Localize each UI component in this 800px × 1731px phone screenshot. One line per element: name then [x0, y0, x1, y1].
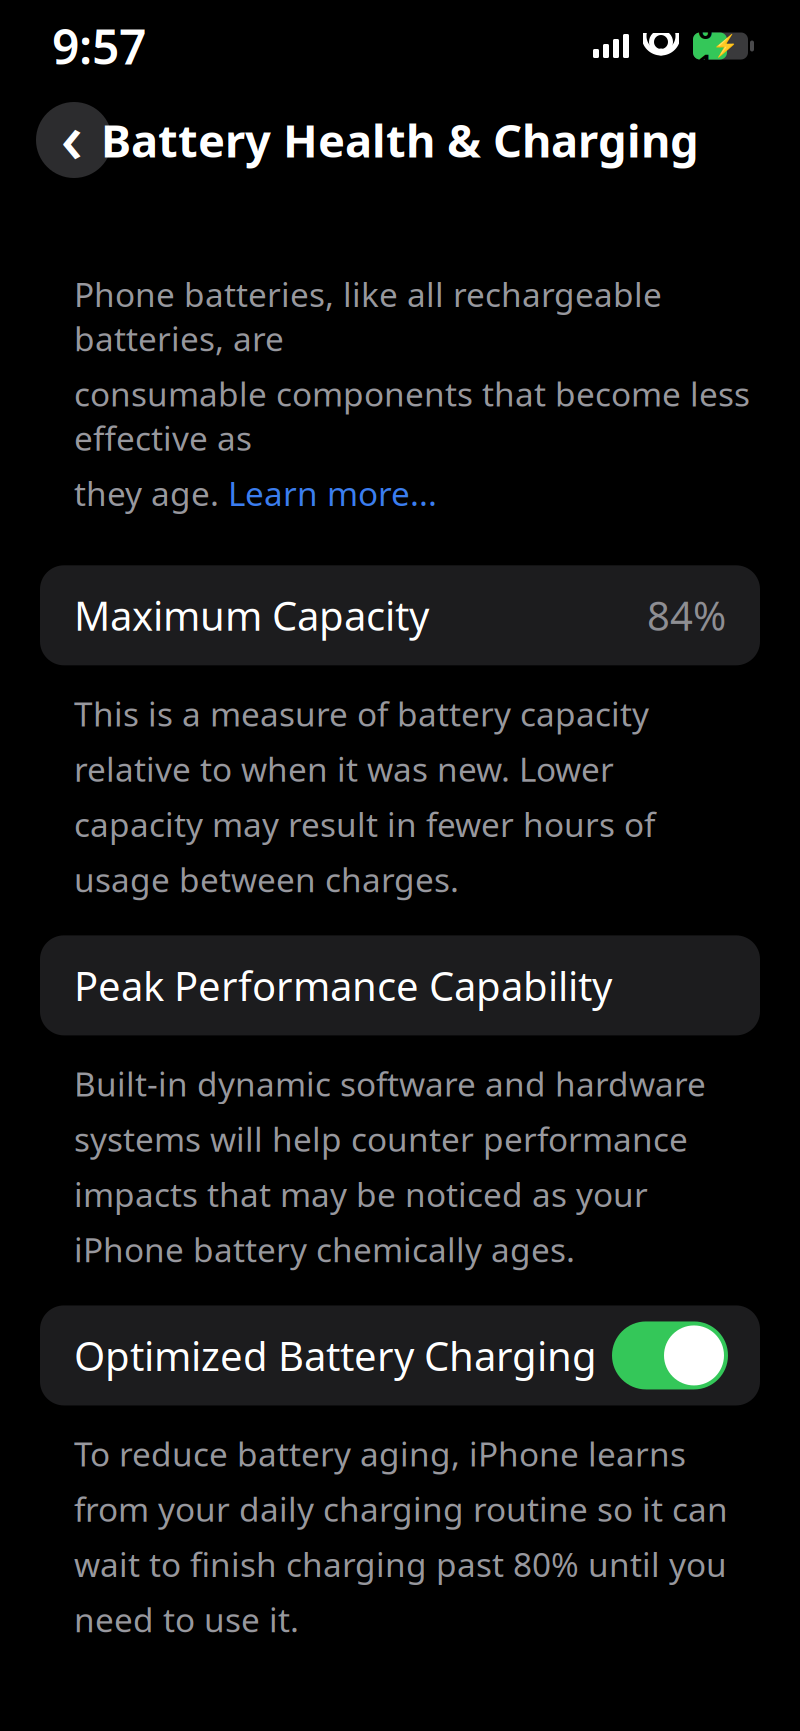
staticText: they age. — [74, 471, 228, 515]
staticText: To reduce battery aging, iPhone learns f… — [74, 1431, 728, 1641]
staticText: Maximum Capacity — [74, 589, 429, 642]
staticText: 61 — [698, 12, 712, 80]
staticText: consumable components that become less e… — [74, 371, 750, 460]
button[interactable]: Maximum Capacity — [40, 565, 760, 665]
staticText: ⚡ — [712, 34, 739, 58]
button[interactable]: Optimized Battery Charging — [40, 1305, 760, 1405]
staticText: This is a measure of battery capacity re… — [74, 691, 655, 901]
staticText: Optimized Battery Charging — [74, 1329, 597, 1382]
staticText: Battery Health & Charging — [101, 110, 699, 170]
staticText: ‹ — [60, 90, 83, 182]
staticText: 84% — [647, 589, 726, 642]
button[interactable]: Back — [36, 102, 112, 178]
button[interactable]: Peak Performance Capability — [40, 935, 760, 1035]
button[interactable]: Learn more... — [228, 471, 437, 515]
staticText: Peak Performance Capability — [74, 959, 612, 1012]
staticText: 9:57 — [52, 14, 146, 78]
staticText: Phone batteries, like all rechargeable b… — [74, 272, 662, 360]
staticText: Built-in dynamic software and hardware s… — [74, 1061, 706, 1271]
staticText: Learn more... — [228, 471, 437, 515]
